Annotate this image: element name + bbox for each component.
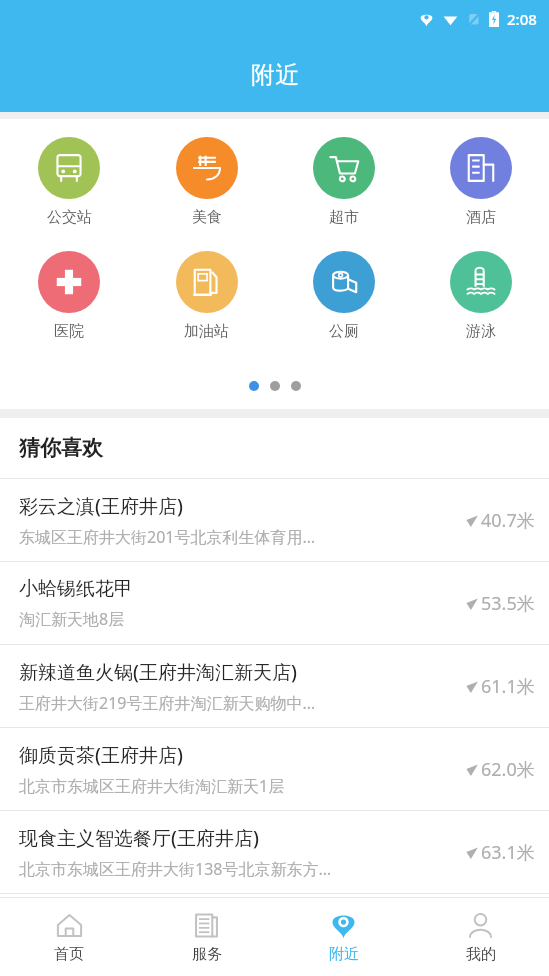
button[interactable]: 新辣道鱼火锅(王府井淘汇新天店): [0, 645, 549, 727]
staticText: 61.1米: [481, 674, 535, 699]
staticText: 美食: [192, 208, 222, 227]
staticText: 2:08: [507, 9, 537, 29]
staticText: 63.1米: [481, 840, 535, 865]
staticText: 超市: [329, 208, 359, 227]
button[interactable]: 医院: [0, 245, 138, 347]
staticText: 酒店: [466, 208, 496, 227]
staticText: 小蛤锡纸花甲: [19, 577, 133, 601]
staticText: 公交站: [47, 208, 92, 227]
staticText: 公厕: [329, 322, 359, 341]
staticText: 服务: [192, 945, 222, 964]
button[interactable]: 公交站: [0, 131, 138, 233]
staticText: 猜你喜欢: [19, 435, 103, 461]
staticText: 62.0米: [481, 757, 535, 782]
staticText: 加油站: [184, 322, 229, 341]
button[interactable]: 加油站: [138, 245, 275, 347]
button[interactable]: 小蛤锡纸花甲: [0, 562, 549, 644]
button[interactable]: 酒店: [412, 131, 549, 233]
staticText: 现食主义智选餐厅(王府井店): [19, 825, 259, 851]
staticText: 附近: [251, 60, 299, 90]
button[interactable]: 美食: [138, 131, 275, 233]
staticText: 我的: [466, 945, 496, 964]
staticText: 东城区王府井大街201号北京利生体育用…: [19, 526, 316, 548]
staticText: 53.5米: [481, 591, 535, 616]
staticText: 淘汇新天地8层: [19, 608, 125, 630]
staticText: 御质贡茶(王府井店): [19, 742, 183, 768]
staticText: 彩云之滇(王府井店): [19, 493, 183, 519]
button[interactable]: 公厕: [275, 245, 412, 347]
button[interactable]: 彩云之滇(王府井店): [0, 479, 549, 561]
button[interactable]: 我的: [412, 898, 549, 976]
button[interactable]: 首页: [0, 898, 138, 976]
staticText: 北京市东城区王府井大街138号北京新东方…: [19, 858, 332, 880]
staticText: 首页: [54, 945, 84, 964]
staticText: 王府井大街219号王府井淘汇新天购物中…: [19, 692, 316, 714]
staticText: 北京市东城区王府井大街淘汇新天1层: [19, 775, 285, 797]
staticText: 新辣道鱼火锅(王府井淘汇新天店): [19, 659, 297, 685]
button[interactable]: 超市: [275, 131, 412, 233]
staticText: 医院: [54, 322, 84, 341]
button[interactable]: 附近: [275, 898, 412, 976]
button[interactable]: 游泳: [412, 245, 549, 347]
staticText: 游泳: [466, 322, 496, 341]
button[interactable]: 御质贡茶(王府井店): [0, 728, 549, 810]
staticText: 附近: [329, 945, 359, 964]
staticText: 40.7米: [481, 508, 535, 533]
button[interactable]: 服务: [138, 898, 275, 976]
button[interactable]: 现食主义智选餐厅(王府井店): [0, 811, 549, 893]
